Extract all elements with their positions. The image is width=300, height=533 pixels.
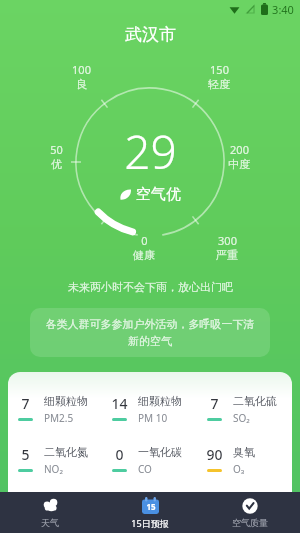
- staticText: 29: [124, 120, 177, 183]
- button[interactable]: 14: [102, 394, 197, 425]
- staticText: 细颗粒物: [138, 394, 182, 408]
- staticText: 二氧化硫: [233, 394, 277, 408]
- staticText: 臭氧: [233, 445, 255, 459]
- staticText: 武汉市: [125, 24, 176, 45]
- staticText: 90: [206, 445, 223, 464]
- button[interactable]: 空气质量: [200, 492, 300, 533]
- staticText: 200: [230, 142, 249, 157]
- staticText: 15日预报: [131, 517, 169, 529]
- staticText: 轻度: [208, 77, 230, 91]
- staticText: 3:40: [272, 2, 294, 17]
- staticText: 空气质量: [232, 517, 268, 528]
- staticText: 严重: [216, 248, 238, 262]
- staticText: 一氧化碳: [138, 445, 182, 459]
- button[interactable]: 90: [197, 445, 292, 476]
- button[interactable]: 7: [197, 394, 292, 425]
- staticText: 细颗粒物: [44, 394, 88, 408]
- staticText: 0: [115, 445, 124, 464]
- staticText: 中度: [228, 157, 250, 171]
- staticText: 7: [21, 394, 30, 413]
- staticText: 未来两小时不会下雨，放心出门吧: [68, 280, 233, 294]
- staticText: 空气优: [136, 185, 181, 204]
- button[interactable]: 15日预报: [100, 492, 200, 533]
- staticText: 150: [210, 62, 229, 77]
- staticText: 15: [146, 501, 156, 512]
- staticText: PM2.5: [44, 411, 74, 425]
- staticText: 天气: [41, 517, 59, 528]
- button[interactable]: 各类人群可多参加户外活动，多呼吸一下清新的空气: [30, 308, 270, 357]
- staticText: O₃: [233, 462, 245, 476]
- staticText: 300: [218, 233, 237, 248]
- staticText: 5: [21, 445, 30, 464]
- staticText: 二氧化氮: [44, 445, 88, 459]
- staticText: SO₂: [233, 411, 250, 425]
- staticText: 50: [50, 142, 63, 157]
- button[interactable]: 天气: [0, 492, 100, 533]
- staticText: PM 10: [138, 411, 168, 425]
- staticText: 7: [210, 394, 219, 413]
- button[interactable]: 0: [102, 445, 197, 476]
- staticText: 100: [72, 62, 91, 77]
- staticText: 各类人群可多参加户外活动，多呼吸一下清新的空气: [44, 317, 256, 348]
- staticText: 14: [111, 394, 128, 413]
- staticText: 健康: [133, 248, 155, 262]
- button[interactable]: 7: [8, 394, 102, 425]
- button[interactable]: 5: [8, 445, 102, 476]
- staticText: CO: [138, 462, 152, 476]
- staticText: 优: [51, 157, 62, 171]
- staticText: NO₂: [44, 462, 63, 476]
- staticText: 良: [76, 77, 87, 91]
- staticText: 0: [141, 233, 148, 248]
